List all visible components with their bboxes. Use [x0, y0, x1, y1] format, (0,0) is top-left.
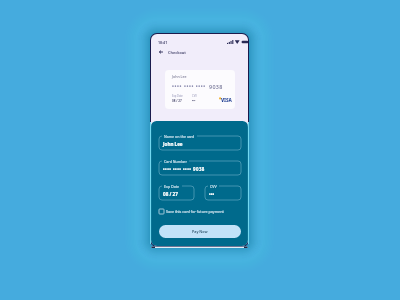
staticText: ••• — [209, 191, 215, 197]
button[interactable]: ••• — [205, 186, 241, 200]
button[interactable]: John Lee — [165, 70, 235, 109]
staticText: 18:41 — [158, 40, 168, 45]
staticText: Card Number — [164, 159, 187, 164]
button[interactable]: 08 / 27 — [159, 186, 194, 200]
staticText: John Lee — [163, 141, 183, 147]
staticText: CVV — [210, 184, 217, 189]
staticText: Pay Now — [192, 229, 208, 234]
button[interactable]: •••• •••• •••• 9038 — [159, 161, 241, 175]
staticText: ••• — [192, 99, 196, 103]
staticText: VISA — [221, 97, 232, 103]
staticText: 08 / 27 — [172, 99, 182, 103]
button[interactable]: Back — [157, 48, 165, 56]
staticText: 08 / 27 — [163, 191, 178, 197]
staticText: Save this card for future payment — [166, 209, 224, 214]
button[interactable]: Pay Now — [159, 225, 241, 238]
staticText: •••• •••• •••• 9038 — [163, 166, 205, 172]
staticText: 9038 — [209, 83, 223, 90]
staticText: Exp Date — [164, 184, 180, 189]
staticText: John Lee — [172, 74, 187, 79]
button[interactable]: Save this card for future payment — [159, 209, 224, 214]
staticText: •••• •••• •••• — [172, 83, 206, 90]
staticText: Name on the card — [164, 134, 195, 139]
staticText: CVV — [192, 94, 197, 98]
staticText: Exp Date — [172, 94, 183, 98]
button[interactable]: John Lee — [159, 136, 241, 150]
staticText: Checkout — [168, 50, 186, 55]
